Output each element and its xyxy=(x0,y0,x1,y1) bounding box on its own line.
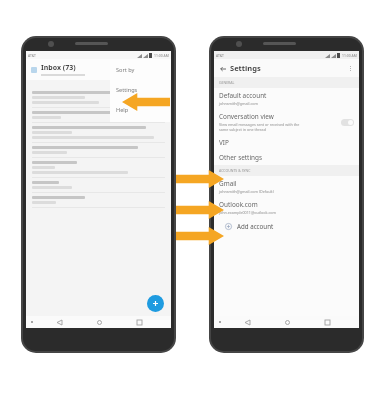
button[interactable] xyxy=(26,193,171,208)
button[interactable]: Conversation view xyxy=(214,109,359,135)
button[interactable]: Default account xyxy=(214,88,359,109)
button[interactable] xyxy=(26,108,171,123)
button[interactable]: Back xyxy=(218,64,227,73)
button[interactable] xyxy=(26,143,171,158)
button[interactable]: Home xyxy=(92,316,106,328)
staticText: Help xyxy=(116,106,129,114)
button[interactable] xyxy=(26,123,171,143)
button[interactable]: Sort by xyxy=(110,60,170,80)
button[interactable]: Help xyxy=(110,100,170,120)
button[interactable]: Open navigation drawer xyxy=(30,66,38,74)
staticText: AT&T xyxy=(28,53,36,58)
staticText: johnsmith@gmail.com xyxy=(219,101,258,106)
staticText: johnsmith@gmail.com (Default) xyxy=(219,189,274,194)
staticText: View email messages sent or received wit… xyxy=(219,122,300,132)
button[interactable]: Other settings xyxy=(214,150,359,165)
button[interactable] xyxy=(26,178,171,193)
staticText: Default account xyxy=(219,91,267,100)
button[interactable]: Add account xyxy=(214,218,359,234)
staticText: ACCOUNTS & SYNC xyxy=(219,168,251,173)
button[interactable]: More options xyxy=(346,64,355,73)
staticText: john.example0011@outlook.com xyxy=(219,210,276,215)
button[interactable]: Compose new email xyxy=(147,295,164,312)
staticText: VIP xyxy=(219,138,229,147)
button[interactable]: Outlook.com xyxy=(214,197,359,218)
staticText: Settings xyxy=(116,86,138,94)
staticText: Add account xyxy=(237,222,274,230)
button[interactable]: Home xyxy=(280,316,294,328)
button[interactable] xyxy=(26,158,171,178)
button[interactable]: VIP xyxy=(214,135,359,150)
button[interactable]: Back xyxy=(52,316,66,328)
staticText: Conversation view xyxy=(219,112,274,121)
staticText: 11:00 AM xyxy=(154,53,169,58)
button[interactable]: Recent apps xyxy=(132,316,146,328)
staticText: AT&T xyxy=(216,53,224,58)
staticText: GENERAL xyxy=(219,80,235,85)
staticText: Outlook.com xyxy=(219,200,258,209)
button[interactable]: Gmail xyxy=(214,176,359,197)
button[interactable]: Back xyxy=(240,316,254,328)
button[interactable]: Conversation view toggle xyxy=(341,119,354,126)
staticText: Sort by xyxy=(116,66,135,74)
button[interactable] xyxy=(26,88,171,108)
button[interactable]: Settings xyxy=(110,80,170,100)
staticText: Other settings xyxy=(219,153,263,162)
staticText: Settings xyxy=(230,63,261,73)
staticText: Inbox (73) xyxy=(41,63,76,73)
button[interactable]: Recent apps xyxy=(320,316,334,328)
staticText: Gmail xyxy=(219,179,237,188)
staticText: 11:00 AM xyxy=(342,53,357,58)
